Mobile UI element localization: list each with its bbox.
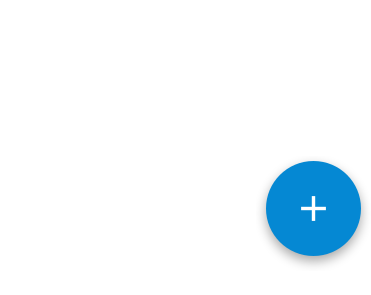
button[interactable]: Add xyxy=(266,161,361,256)
